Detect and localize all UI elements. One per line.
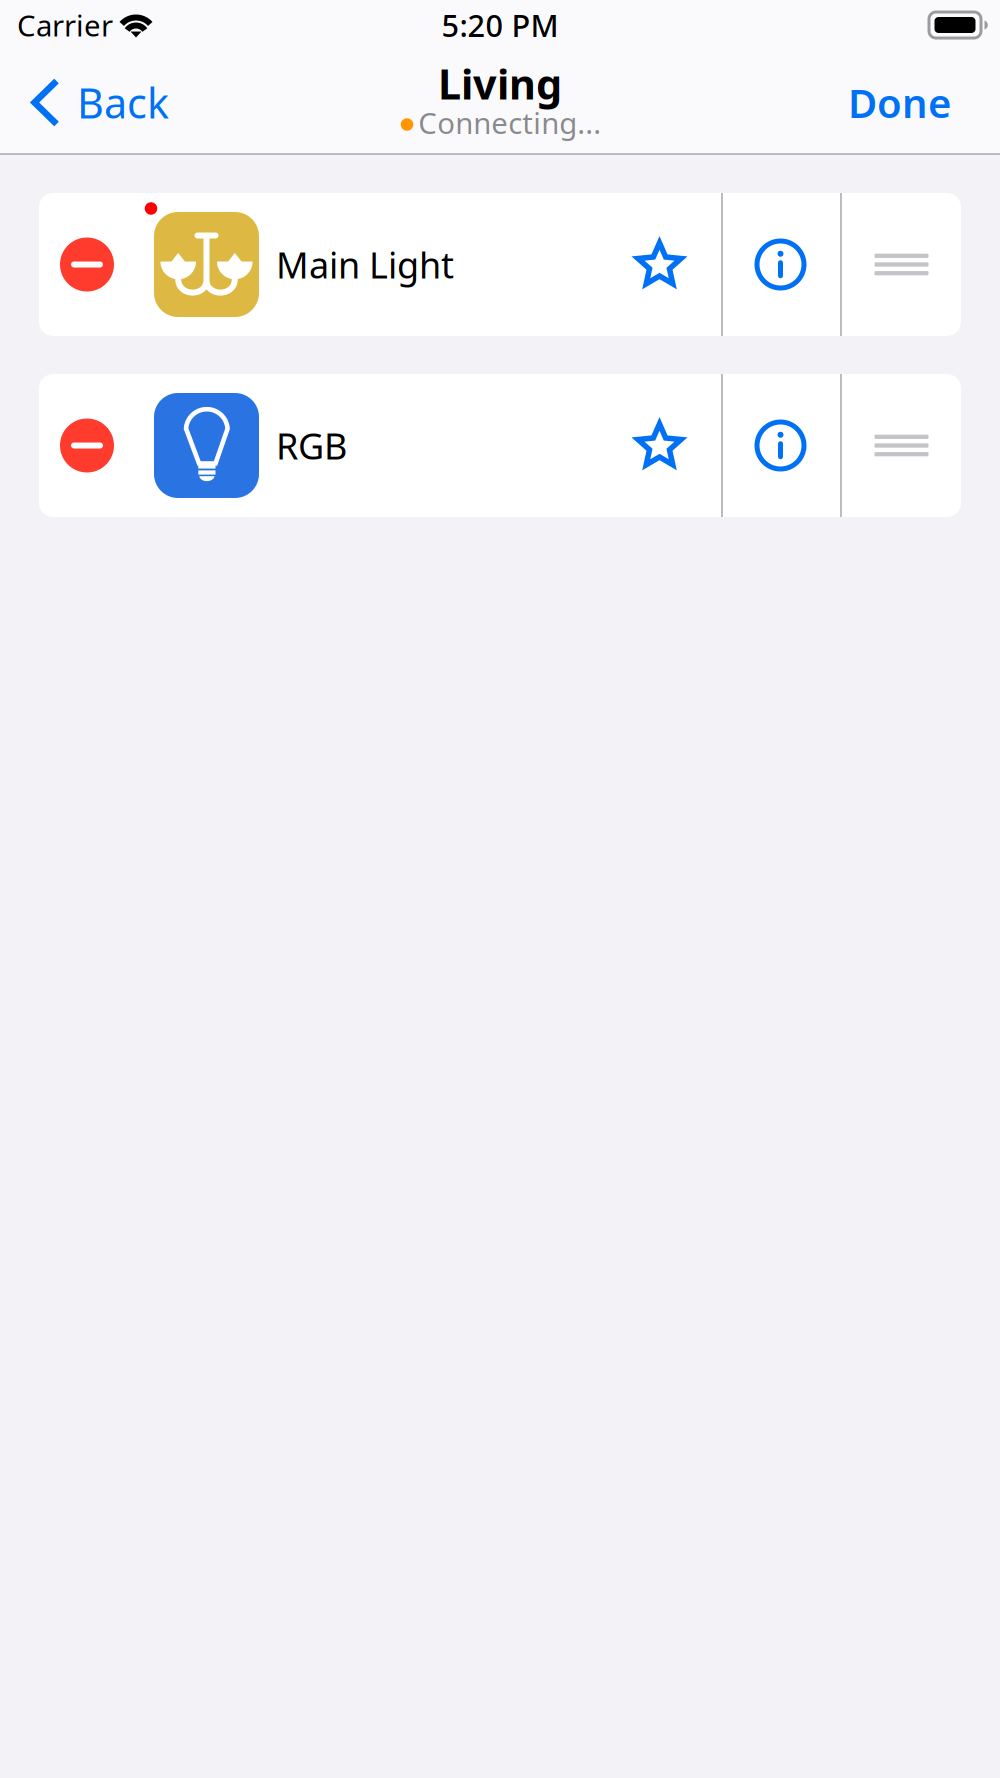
staticText: Living (438, 56, 562, 111)
button[interactable]: Remove Main Light (39, 193, 154, 336)
staticText: Back (77, 75, 169, 130)
button[interactable]: Favourite RGB (598, 374, 721, 517)
button[interactable]: Remove RGB (39, 374, 154, 517)
staticText: Done (848, 76, 951, 129)
staticText: Main Light (276, 241, 454, 288)
button[interactable]: Reorder Main Light (842, 193, 961, 336)
staticText: 5:20 PM (441, 5, 558, 45)
button[interactable]: Favourite Main Light (598, 193, 721, 336)
button[interactable]: Info about RGB (723, 374, 840, 517)
button[interactable]: Reorder RGB (842, 374, 961, 517)
button[interactable]: Info about Main Light (723, 193, 840, 336)
staticText: Carrier (17, 5, 113, 44)
staticText: RGB (276, 422, 347, 469)
staticText: Connecting... (418, 103, 601, 142)
button[interactable]: Back (0, 50, 187, 155)
button[interactable]: Done (830, 50, 1000, 155)
